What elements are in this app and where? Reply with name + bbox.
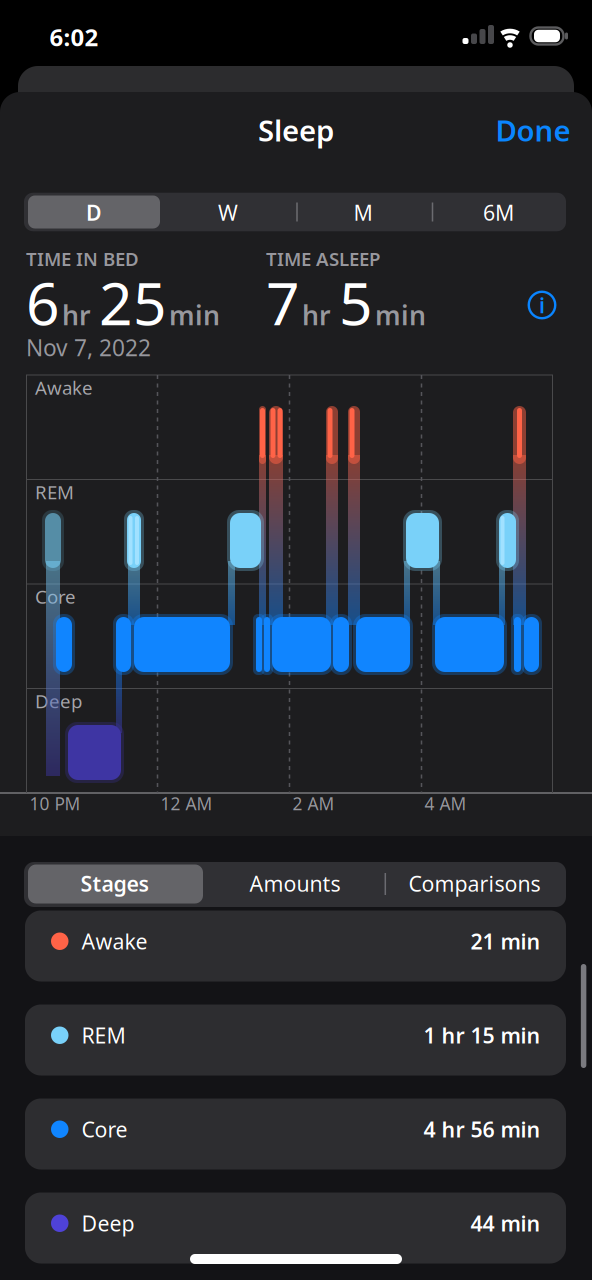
staticText: TIME ASLEEP	[266, 246, 380, 271]
staticText: Awake	[35, 375, 93, 400]
staticText: 7	[266, 263, 300, 341]
staticText: Core	[81, 1115, 127, 1143]
button[interactable]: M	[353, 198, 372, 227]
staticText: Done	[495, 110, 570, 149]
button[interactable]: 6M	[483, 198, 514, 227]
button[interactable]	[28, 864, 203, 903]
staticText: 5	[339, 263, 373, 341]
staticText: 1 hr 15 min	[423, 1021, 540, 1049]
button[interactable]: Stages	[80, 869, 149, 898]
staticText: 4 hr 56 min	[423, 1115, 540, 1143]
staticText: 44 min	[470, 1209, 540, 1237]
staticText: 12 AM	[160, 792, 212, 815]
staticText: 6M	[483, 198, 514, 227]
staticText: W	[218, 198, 238, 227]
staticText: hr	[62, 297, 91, 333]
staticText: Amounts	[249, 869, 340, 898]
staticText: min	[169, 297, 220, 333]
button[interactable]: REM	[25, 1004, 566, 1075]
staticText: 6:02	[49, 21, 98, 53]
staticText: Stages	[80, 869, 149, 898]
button[interactable]: W	[218, 198, 238, 227]
button[interactable]: Awake	[25, 910, 566, 981]
staticText: 6	[26, 263, 60, 341]
staticText: Deep	[81, 1209, 134, 1237]
staticText: Deep	[35, 689, 82, 713]
staticText: REM	[35, 480, 74, 504]
staticText: D	[86, 198, 102, 227]
staticText: Comparisons	[409, 869, 541, 898]
staticText: i	[539, 291, 545, 319]
button[interactable]: Deep	[25, 1192, 566, 1263]
button[interactable]: Comparisons	[409, 869, 541, 898]
button[interactable]: Amounts	[249, 869, 340, 898]
staticText: 21 min	[470, 927, 540, 955]
button[interactable]: Done	[495, 110, 570, 149]
staticText: REM	[81, 1021, 125, 1049]
staticText: 2 AM	[292, 792, 334, 815]
staticText: Core	[35, 584, 76, 609]
staticText: hr	[302, 297, 331, 333]
staticText: Sleep	[258, 110, 334, 149]
button[interactable]	[28, 195, 160, 228]
staticText: 4 AM	[424, 792, 466, 815]
button[interactable]: D	[86, 198, 102, 227]
staticText: 25	[99, 263, 167, 341]
staticText: Awake	[81, 927, 147, 955]
button[interactable]: i	[529, 291, 555, 319]
button[interactable]: Core	[25, 1098, 566, 1169]
staticText: Nov 7, 2022	[26, 332, 151, 363]
staticText: M	[353, 198, 372, 227]
staticText: 10 PM	[29, 792, 80, 815]
staticText: TIME IN BED	[26, 246, 139, 271]
staticText: min	[375, 297, 426, 333]
